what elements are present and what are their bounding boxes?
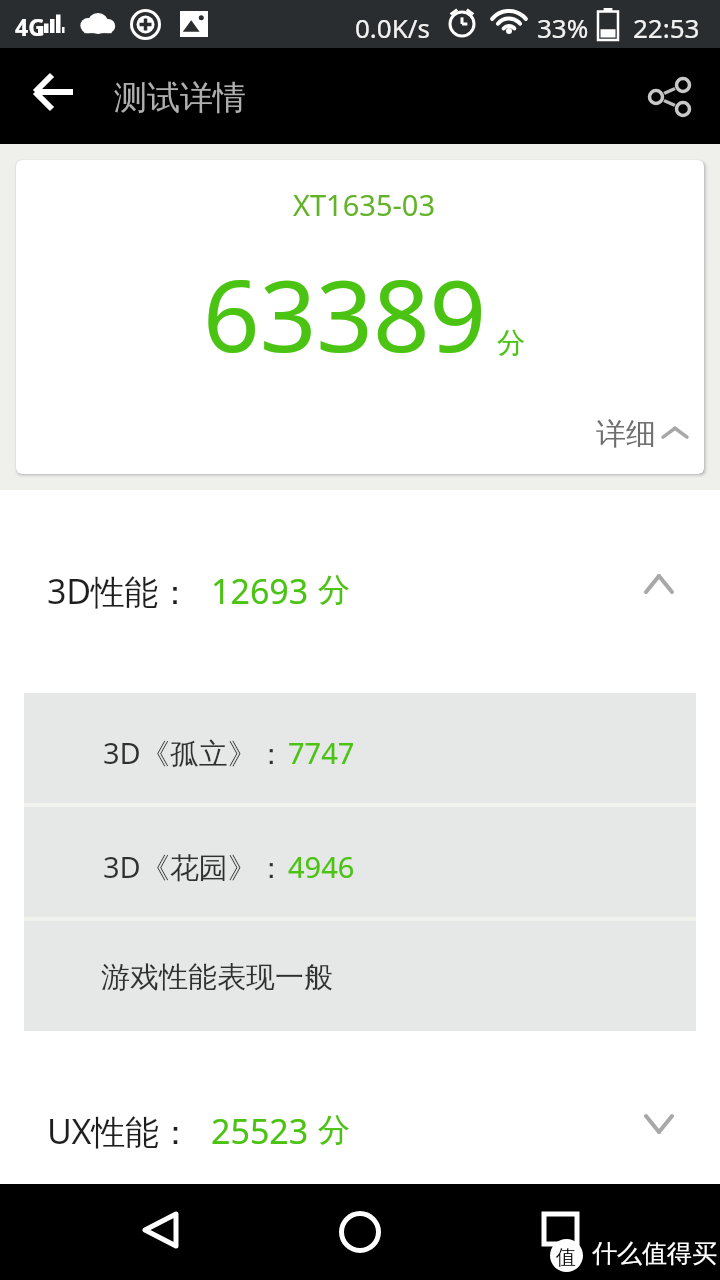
staticText: 63389	[203, 246, 487, 381]
button[interactable]: 3D《孤立》：	[24, 693, 696, 805]
staticText: 什么值得买	[592, 1238, 717, 1269]
staticText: UX性能：	[47, 1108, 193, 1154]
staticText: 22:53	[633, 10, 700, 45]
staticText: 游戏性能表现一般	[101, 959, 333, 996]
button[interactable]: 3D《花园》：	[24, 807, 696, 917]
staticText: 3D《花园》：	[103, 847, 286, 887]
staticText: 详细	[596, 415, 656, 453]
button[interactable]: 游戏性能表现一般	[24, 919, 696, 1031]
staticText: 4946	[288, 847, 355, 886]
button[interactable]: UX性能：	[0, 1031, 720, 1184]
staticText: 分	[318, 570, 350, 610]
button[interactable]: Back	[141, 1208, 181, 1252]
button[interactable]: 详细	[596, 415, 689, 453]
button[interactable]: Recents	[540, 1210, 582, 1252]
button[interactable]: Back	[20, 36, 90, 114]
staticText: 分	[497, 325, 525, 360]
staticText: 测试详情	[114, 77, 246, 119]
staticText: 分	[318, 1110, 350, 1150]
staticText: 4G	[15, 11, 45, 42]
staticText: 0.0K/s	[355, 10, 430, 45]
staticText: 7747	[288, 733, 355, 772]
staticText: 25523	[211, 1108, 309, 1154]
staticText: 12693	[211, 568, 309, 614]
button[interactable]: Share	[636, 50, 694, 106]
staticText: XT1635-03	[293, 185, 435, 224]
staticText: 3D《孤立》：	[103, 733, 286, 773]
button[interactable]: Home	[338, 1210, 382, 1254]
staticText: 33%	[537, 10, 589, 45]
staticText: 3D性能：	[47, 568, 192, 614]
staticText: 值	[556, 1245, 576, 1270]
button[interactable]: 3D性能：	[0, 490, 720, 693]
